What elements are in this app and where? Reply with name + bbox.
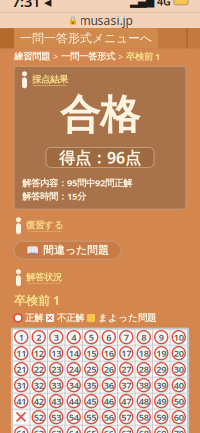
staticText: 得点：96点	[59, 147, 141, 168]
staticText: ✕	[46, 313, 54, 323]
staticText: ✕	[14, 407, 29, 427]
staticText: 45	[86, 395, 96, 407]
staticText: 24	[69, 363, 79, 375]
button[interactable]: 📖	[14, 241, 121, 259]
staticText: 4	[71, 331, 76, 343]
staticText: 22	[34, 363, 44, 375]
staticText: 57	[121, 411, 131, 423]
staticText: 61	[16, 427, 26, 433]
staticText: 33	[51, 379, 61, 391]
staticText: 3	[54, 331, 59, 343]
button[interactable]: 一問一答形式メニューへ	[14, 28, 158, 48]
staticText: ▂▄▆	[130, 0, 154, 7]
staticText: 25	[86, 363, 96, 375]
staticText: 17	[121, 347, 131, 359]
staticText: 12	[34, 347, 44, 359]
staticText: 52	[34, 411, 44, 423]
staticText: 39	[156, 379, 166, 391]
staticText: 60	[174, 411, 184, 423]
staticText: 66	[104, 427, 114, 433]
staticText: 34	[69, 379, 79, 391]
staticText: 46	[104, 395, 114, 407]
staticText: 43	[51, 395, 61, 407]
staticText: 一問一答形式メニューへ	[20, 31, 152, 46]
staticText: 採点結果	[32, 74, 68, 85]
staticText: 64	[69, 427, 79, 433]
staticText: 🔒	[67, 16, 77, 25]
staticText: 7:31 ◂	[12, 0, 51, 11]
staticText: 9	[159, 331, 164, 343]
staticText: 16	[104, 347, 114, 359]
staticText: 11	[16, 347, 26, 359]
staticText: 41	[16, 395, 26, 407]
staticText: 6	[106, 331, 111, 343]
staticText: 4G	[154, 0, 174, 8]
staticText: 一問一答形式	[61, 51, 115, 62]
staticText: 56	[104, 411, 114, 423]
staticText: 68	[139, 427, 149, 433]
staticText: 38	[139, 379, 149, 391]
staticText: >	[118, 50, 123, 62]
staticText: 18	[139, 347, 149, 359]
staticText: 14	[69, 347, 79, 359]
staticText: 50	[174, 395, 184, 407]
staticText: 59	[156, 411, 166, 423]
button[interactable]: Address bar, musasi.jp	[0, 12, 200, 28]
staticText: 49	[156, 395, 166, 407]
staticText: >	[53, 50, 58, 62]
staticText: 63	[51, 427, 61, 433]
staticText: 解答内容：95問中92問正解	[22, 176, 132, 189]
staticText: 35	[86, 379, 96, 391]
staticText: 1	[19, 331, 24, 343]
staticText: 42	[34, 395, 44, 407]
staticText: 7	[124, 331, 129, 343]
staticText: 5	[89, 331, 94, 343]
staticText: 不正解	[57, 312, 84, 324]
staticText: 2	[36, 331, 41, 343]
staticText: 62	[34, 427, 44, 433]
staticText: まよった問題	[98, 312, 156, 324]
staticText: 48	[139, 395, 149, 407]
staticText: 8	[141, 331, 146, 343]
staticText: 20	[174, 347, 184, 359]
staticText: 練習問題	[14, 51, 50, 62]
staticText: 53	[51, 411, 61, 423]
staticText: 65	[86, 427, 96, 433]
staticText: 19	[156, 347, 166, 359]
staticText: 27	[121, 363, 131, 375]
staticText: 13	[51, 347, 61, 359]
staticText: 26	[104, 363, 114, 375]
staticText: 54	[69, 411, 79, 423]
staticText: 解答時間：15分	[22, 190, 86, 202]
staticText: 32	[34, 379, 44, 391]
staticText: 55	[86, 411, 96, 423]
staticText: 卒検前 1	[126, 50, 160, 62]
staticText: 卒検前 1	[14, 292, 60, 308]
staticText: 23	[51, 363, 61, 375]
staticText: 37	[121, 379, 131, 391]
staticText: 解答状況	[26, 271, 62, 283]
staticText: 29	[156, 363, 166, 375]
staticText: 復習する	[26, 219, 64, 231]
staticText: 31	[16, 379, 26, 391]
staticText: 15	[86, 347, 96, 359]
staticText: 間違った問題	[43, 244, 109, 257]
staticText: 28	[139, 363, 149, 375]
staticText: 30	[174, 363, 184, 375]
staticText: 44	[69, 395, 79, 407]
staticText: 70	[174, 427, 184, 433]
staticText: musasi.jp	[79, 12, 132, 28]
staticText: 69	[156, 427, 166, 433]
staticText: 47	[121, 395, 131, 407]
staticText: 10	[174, 331, 184, 343]
staticText: 40	[174, 379, 184, 391]
staticText: 36	[104, 379, 114, 391]
staticText: 58	[139, 411, 149, 423]
staticText: 正解	[25, 312, 43, 324]
staticText: 21	[16, 363, 26, 375]
staticText: 67	[121, 427, 131, 433]
staticText: 合格	[60, 90, 140, 139]
staticText: 📖	[26, 244, 39, 256]
